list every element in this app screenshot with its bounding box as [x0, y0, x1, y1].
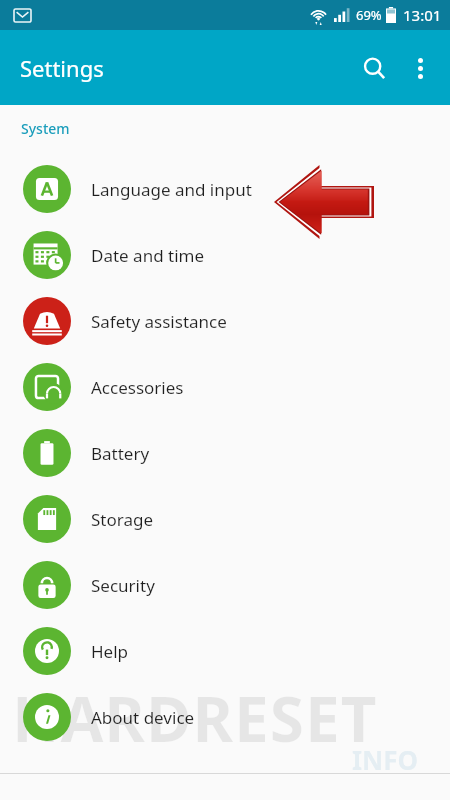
button[interactable]: Accessories	[0, 354, 450, 420]
button[interactable]: Language and input	[0, 156, 450, 222]
button[interactable]: Battery	[0, 420, 450, 486]
staticText: Safety assistance	[91, 310, 227, 333]
button[interactable]: About device	[0, 684, 450, 750]
staticText: Storage	[91, 508, 154, 531]
staticText: System	[21, 119, 70, 138]
staticText: HARDRESET	[12, 676, 378, 760]
staticText: Settings	[20, 53, 104, 83]
staticText: 13:01	[403, 5, 442, 25]
button[interactable]: Storage	[0, 486, 450, 552]
staticText: INFO	[352, 742, 419, 777]
staticText: Language and input	[91, 178, 252, 201]
button[interactable]: Safety assistance	[0, 288, 450, 354]
staticText: Security	[91, 574, 155, 597]
staticText: 69%	[356, 6, 382, 24]
button[interactable]: Search	[350, 44, 398, 92]
button[interactable]: Help	[0, 618, 450, 684]
staticText: Battery	[91, 442, 150, 465]
button[interactable]: Security	[0, 552, 450, 618]
staticText: Accessories	[91, 376, 184, 399]
button[interactable]: More options	[398, 46, 442, 90]
staticText: Date and time	[91, 244, 205, 267]
staticText: Help	[91, 640, 129, 663]
staticText: About device	[91, 706, 195, 729]
button[interactable]: Date and time	[0, 222, 450, 288]
